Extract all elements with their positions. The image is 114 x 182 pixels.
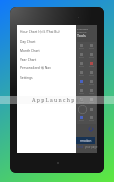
staticText: Hour Chart (今日/Thai Bu) (20, 29, 60, 34)
staticText: Month Chart (20, 48, 40, 52)
button[interactable]: Tool (77, 114, 86, 123)
button[interactable]: Hour Chart (今日/Thai Bu) (17, 27, 76, 36)
button[interactable]: Tool (87, 78, 96, 87)
button[interactable]: Tool (77, 69, 86, 78)
staticText: your page (85, 145, 98, 149)
button[interactable]: Settings (17, 72, 76, 81)
button[interactable]: D-pad (78, 105, 87, 114)
button[interactable]: rmation (76, 137, 95, 144)
button[interactable]: Year Chart (17, 54, 76, 63)
button[interactable]: Month Chart (17, 45, 76, 54)
button[interactable]: Tool (77, 78, 86, 87)
staticText: Day Chart (20, 39, 36, 43)
button[interactable]: Tool (87, 114, 96, 123)
staticText: Tools (77, 33, 86, 38)
staticText: Extended controls (77, 27, 98, 33)
staticText: rmation (80, 139, 92, 143)
button[interactable]: Tool (87, 60, 96, 69)
button[interactable]: Tool (87, 69, 96, 78)
staticText: Year Chart (20, 57, 37, 61)
button[interactable]: Personalized 個 Nav (17, 63, 76, 72)
button[interactable]: Tool (77, 60, 86, 69)
button[interactable]: Reset (89, 127, 93, 131)
staticText: A p p L a u n c h p a d (32, 97, 83, 104)
button[interactable]: Tool (77, 51, 86, 60)
button[interactable]: Tool (87, 87, 96, 96)
button[interactable]: Tool (87, 51, 96, 60)
button[interactable]: Tool (77, 96, 86, 105)
button[interactable]: Tool (77, 87, 86, 96)
button[interactable]: Tool (87, 42, 96, 51)
button[interactable]: Tool (89, 107, 93, 112)
button[interactable]: Tool (87, 96, 96, 105)
staticText: Personalized 個 Nav (20, 65, 51, 70)
staticText: Settings (20, 75, 33, 79)
button[interactable]: Day Chart (17, 36, 76, 45)
button[interactable]: Tool (77, 42, 86, 51)
staticText: Send (77, 145, 84, 149)
